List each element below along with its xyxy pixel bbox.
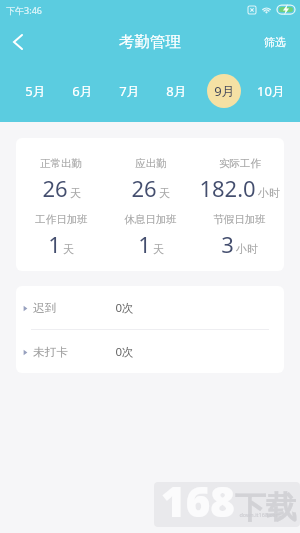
staticText: 筛选 xyxy=(264,35,286,49)
staticText: 168 xyxy=(161,472,235,529)
staticText: down.it168.com xyxy=(239,511,281,518)
staticText: 工作日加班 xyxy=(35,213,88,226)
staticText: 天 xyxy=(63,242,74,256)
staticText: 26 xyxy=(131,173,157,203)
staticText: 休息日加班 xyxy=(124,213,177,226)
button[interactable]: 筛选 xyxy=(252,19,300,64)
staticText: 10月 xyxy=(257,82,285,100)
staticText: 9月 xyxy=(214,82,235,100)
staticText: 0次 xyxy=(115,300,134,316)
staticText: 未打卡 xyxy=(33,345,68,359)
button[interactable]: 7月 xyxy=(106,62,153,120)
staticText: 正常出勤 xyxy=(40,157,82,170)
button[interactable]: 9月 xyxy=(200,62,247,120)
staticText: 1 xyxy=(138,229,151,259)
staticText: 6月 xyxy=(72,82,93,100)
staticText: 7月 xyxy=(119,82,140,100)
staticText: 节假日加班 xyxy=(213,213,266,226)
staticText: 天 xyxy=(70,186,81,200)
staticText: 天 xyxy=(159,186,170,200)
staticText: 0次 xyxy=(115,344,134,360)
staticText: 5月 xyxy=(25,82,46,100)
button[interactable]: 5月 xyxy=(11,62,59,120)
button[interactable]: 6月 xyxy=(59,62,106,120)
button[interactable]: Back xyxy=(0,19,40,64)
staticText: 小时 xyxy=(236,242,258,256)
staticText: 考勤管理 xyxy=(119,32,181,52)
button[interactable]: 10月 xyxy=(247,62,294,120)
button[interactable]: 未打卡 xyxy=(16,330,284,373)
staticText: 下午3:46 xyxy=(6,4,42,16)
staticText: 下载 xyxy=(235,488,297,527)
button[interactable]: 8月 xyxy=(153,62,200,120)
staticText: 1 xyxy=(48,229,61,259)
staticText: 迟到 xyxy=(33,301,56,315)
staticText: 8月 xyxy=(166,82,187,100)
staticText: 小时 xyxy=(258,186,280,200)
staticText: 182.0 xyxy=(199,173,256,203)
staticText: 26 xyxy=(42,173,68,203)
staticText: 应出勤 xyxy=(135,157,167,170)
staticText: 实际工作 xyxy=(219,157,261,170)
button[interactable]: 迟到 xyxy=(16,286,284,329)
staticText: 天 xyxy=(153,242,164,256)
staticText: 3 xyxy=(221,229,234,259)
